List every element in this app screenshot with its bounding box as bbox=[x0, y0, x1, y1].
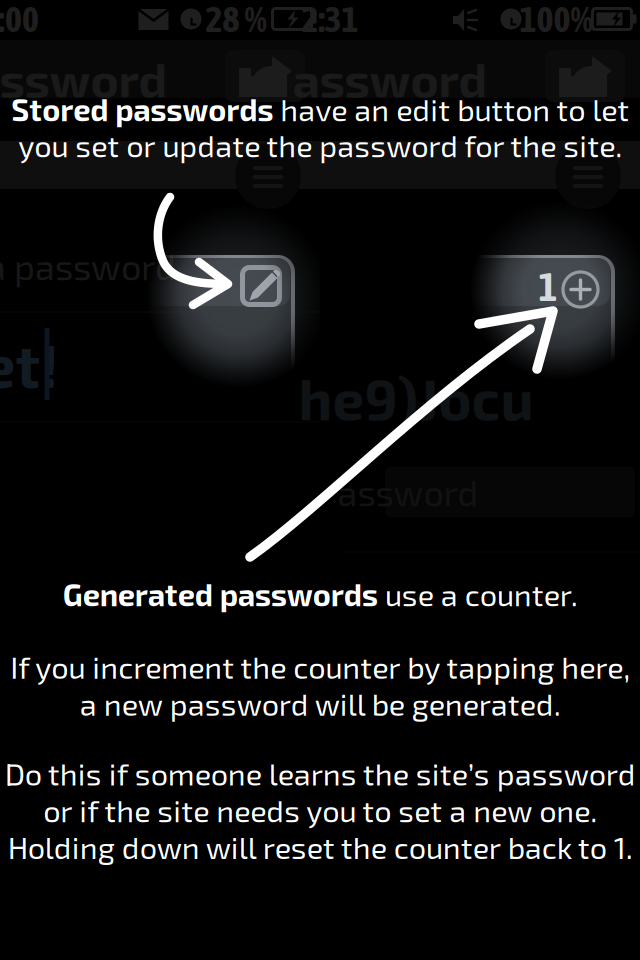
staticText: 2:31 bbox=[301, 0, 358, 40]
staticText: If you increment the counter by tapping … bbox=[10, 648, 630, 722]
staticText: Generated passwords use a counter. bbox=[62, 576, 577, 612]
staticText: 2:00 bbox=[0, 0, 39, 40]
staticText: assword bbox=[292, 49, 487, 107]
staticText: 1 bbox=[538, 264, 557, 309]
staticText: Stored passwords have an edit button to … bbox=[11, 91, 629, 163]
staticText: Do this if someone learns the site’s pas… bbox=[4, 755, 635, 865]
staticText: assword bbox=[0, 49, 167, 107]
staticText: 100% bbox=[519, 0, 592, 40]
staticText: t a password bbox=[0, 244, 176, 288]
staticText: assword bbox=[337, 470, 478, 514]
staticText: 28 % bbox=[205, 0, 266, 40]
staticText: he9)Jocu bbox=[298, 364, 533, 432]
staticText: et! bbox=[0, 328, 58, 400]
